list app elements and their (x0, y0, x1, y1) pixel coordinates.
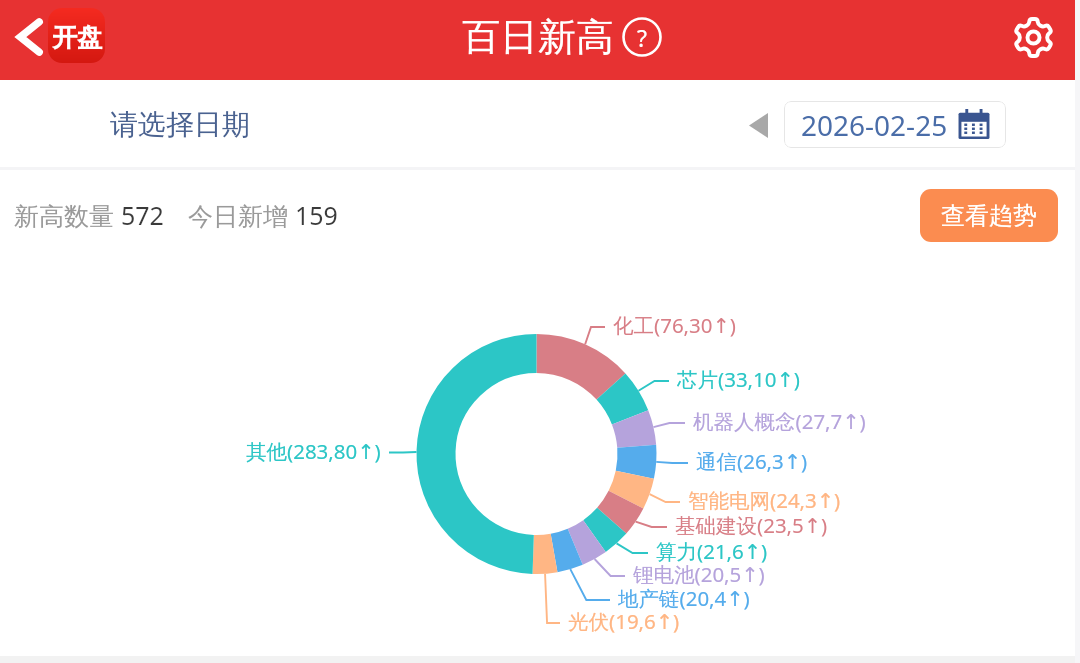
staticText: 机器人概念(27,7↑) (693, 407, 866, 435)
staticText: 算力(21,6↑) (656, 537, 768, 565)
button[interactable]: Back (0, 13, 109, 68)
button[interactable]: 2026-02-25 (784, 101, 1006, 148)
staticText: 锂电池(20,5↑) (633, 560, 765, 588)
staticText: 新高数量 (14, 198, 121, 232)
staticText: 通信(26,3↑) (696, 447, 808, 475)
staticText: 请选择日期 (110, 107, 250, 142)
staticText: 其他(283,80↑) (246, 437, 381, 465)
staticText: 159 (295, 198, 338, 232)
staticText: 光伏(19,6↑) (568, 607, 680, 635)
staticText: 572 (121, 198, 164, 232)
button[interactable]: Previous day (738, 105, 778, 145)
staticText: ? (637, 22, 647, 53)
staticText: 开盘 (52, 22, 102, 53)
staticText: 查看趋势 (941, 201, 1037, 231)
staticText: 2026-02-25 (801, 106, 948, 144)
staticText: 地产链(20,4↑) (618, 584, 750, 612)
button[interactable]: Settings (1005, 12, 1061, 68)
button[interactable]: Help (623, 18, 661, 56)
staticText: 智能电网(24,3↑) (688, 486, 841, 514)
staticText: 芯片(33,10↑) (677, 365, 800, 393)
staticText: 百日新高 (462, 13, 614, 61)
staticText: 化工(76,30↑) (613, 311, 736, 339)
staticText: 今日新增 (188, 198, 295, 232)
staticText: 基础建设(23,5↑) (675, 511, 828, 539)
button[interactable]: 查看趋势 (920, 189, 1058, 242)
